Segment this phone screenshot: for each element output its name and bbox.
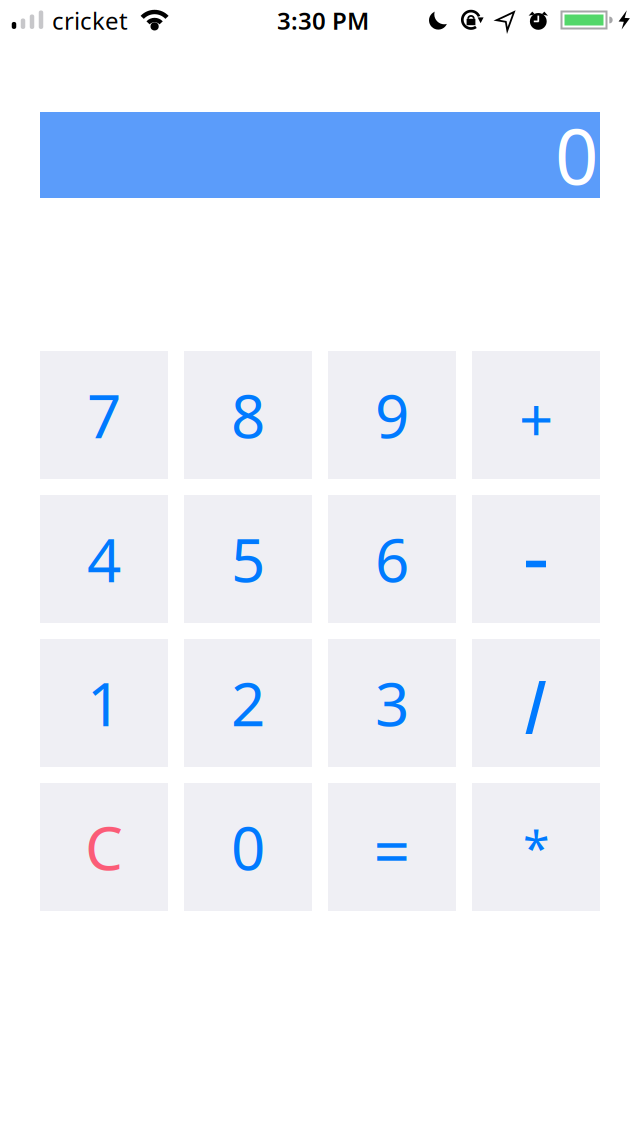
button[interactable]: 9 [328, 351, 456, 479]
staticText: = [373, 807, 410, 892]
staticText: 3:30 PM [277, 5, 369, 36]
staticText: * [523, 815, 549, 879]
staticText: 3 [375, 663, 409, 743]
staticText: 8 [231, 375, 265, 455]
button[interactable]: 2 [184, 639, 312, 767]
button[interactable]: = [328, 783, 456, 911]
staticText: 0 [231, 807, 265, 887]
button[interactable]: C [40, 783, 168, 911]
button[interactable]: + [472, 351, 600, 479]
staticText: + [519, 379, 553, 459]
button[interactable]: 0 [184, 783, 312, 911]
button[interactable]: 1 [40, 639, 168, 767]
staticText: 9 [375, 375, 409, 455]
button[interactable]: 3 [328, 639, 456, 767]
staticText: cricket [52, 5, 128, 36]
button[interactable]: 8 [184, 351, 312, 479]
button[interactable]: * [472, 783, 600, 911]
button[interactable]: 7 [40, 351, 168, 479]
staticText: 6 [375, 519, 409, 599]
staticText: 7 [87, 375, 121, 455]
staticText: 2 [231, 663, 265, 743]
button[interactable]: 4 [40, 495, 168, 623]
staticText: C [85, 807, 123, 887]
button[interactable]: Subtract [472, 495, 600, 623]
staticText: 0 [555, 104, 598, 205]
staticText: 5 [231, 519, 265, 599]
button[interactable]: 5 [184, 495, 312, 623]
staticText: 4 [87, 519, 121, 599]
button[interactable]: 6 [328, 495, 456, 623]
button[interactable]: Divide [472, 639, 600, 767]
staticText: 1 [87, 663, 121, 743]
